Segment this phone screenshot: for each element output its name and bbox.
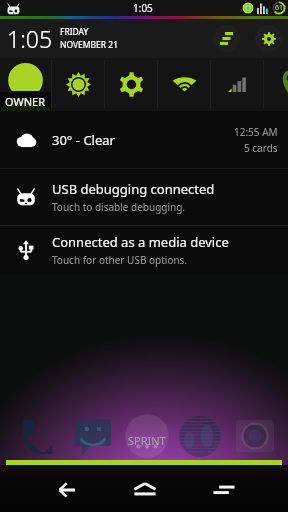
staticText: Touch for other USB options. <box>52 253 188 267</box>
button[interactable]: Settings <box>255 25 282 52</box>
staticText: 12:55 AM <box>234 125 278 139</box>
staticText: USB debugging connected <box>52 180 215 198</box>
button[interactable]: USB debugging connected <box>0 169 288 225</box>
button[interactable]: Mobile data <box>211 58 263 111</box>
staticText: OWNER <box>5 94 46 109</box>
staticText: FRIDAY <box>60 26 89 38</box>
button[interactable]: Settings <box>105 58 157 111</box>
staticText: SPRINT <box>128 433 166 447</box>
button[interactable]: Owner <box>0 58 51 111</box>
button[interactable]: Home <box>121 465 169 512</box>
staticText: 30° - Clear <box>52 131 115 149</box>
staticText: 1:05 <box>133 1 153 15</box>
button[interactable]: Back <box>40 465 88 512</box>
staticText: 5 cards <box>244 141 278 155</box>
staticText: NOVEMBER 21 <box>60 39 119 51</box>
staticText: 61 <box>275 3 284 13</box>
button[interactable]: Brightness <box>52 58 104 111</box>
button[interactable]: Clear all notifications <box>213 25 240 52</box>
button[interactable]: Location <box>264 58 288 111</box>
staticText: 1:05 <box>7 23 53 54</box>
button[interactable]: Wi-Fi <box>158 58 210 111</box>
button[interactable]: SPRINT <box>122 433 172 447</box>
button[interactable]: Recent apps <box>200 465 248 512</box>
button[interactable]: Connected as a media device <box>0 226 288 274</box>
staticText: Touch to disable debugging. <box>52 200 186 214</box>
button[interactable]: 30° - Clear <box>0 111 288 168</box>
staticText: Connected as a media device <box>52 233 229 251</box>
